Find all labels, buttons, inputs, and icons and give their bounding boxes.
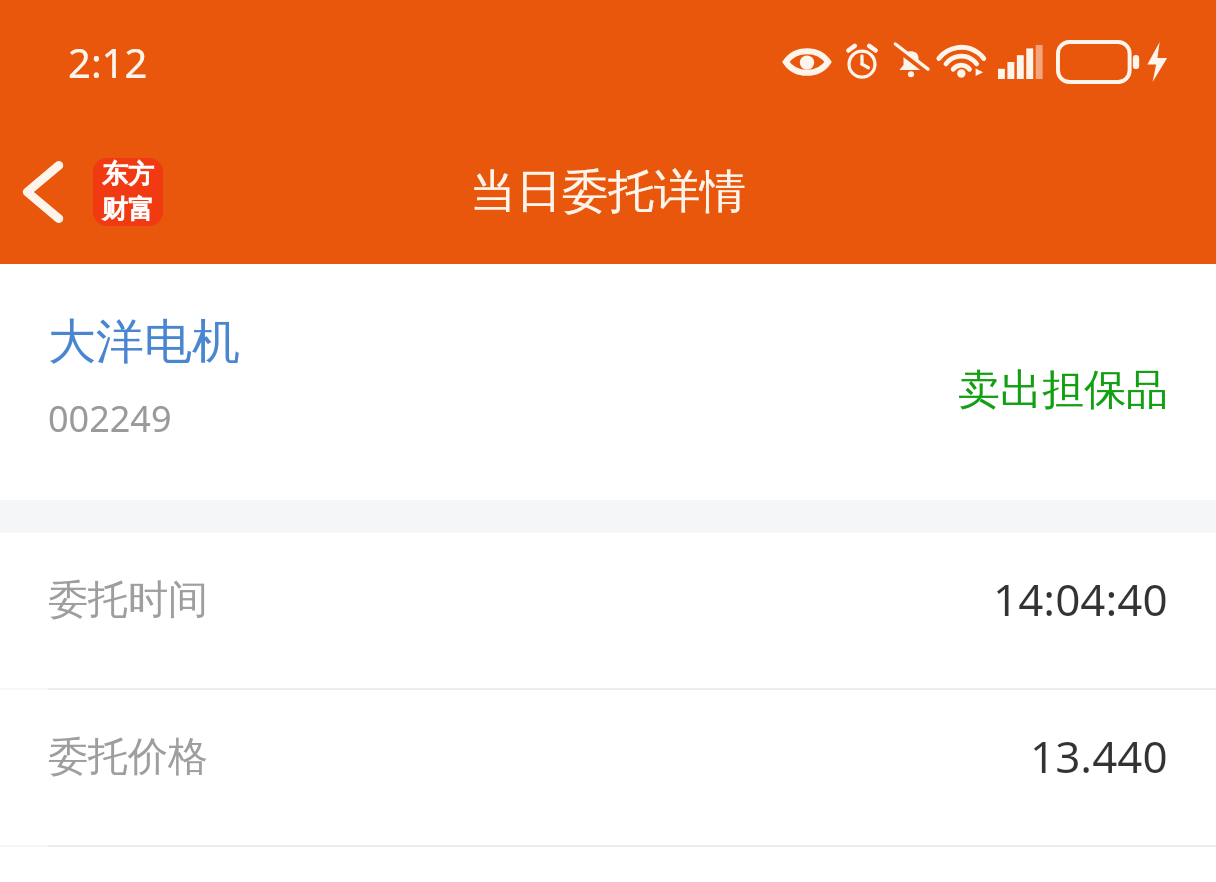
staticText: 002249 <box>48 394 172 443</box>
staticText: 财富 <box>102 193 154 226</box>
staticText: 委托价格 <box>48 731 208 781</box>
button[interactable]: 大洋电机 <box>0 264 1216 500</box>
staticText: 当日委托详情 <box>470 163 746 221</box>
button[interactable]: 返回 <box>0 144 86 240</box>
button[interactable]: 委托时间 <box>0 533 1216 688</box>
staticText: 委托时间 <box>48 574 208 624</box>
staticText: 东方 <box>102 158 154 191</box>
button[interactable]: 东方财富 <box>93 158 163 226</box>
staticText: 2:12 <box>68 35 148 89</box>
staticText: 大洋电机 <box>48 312 240 372</box>
staticText: 13.440 <box>1030 726 1168 786</box>
button[interactable]: 委托价格 <box>0 690 1216 845</box>
staticText: 14:04:40 <box>993 569 1168 629</box>
staticText: 卖出担保品 <box>958 364 1168 417</box>
